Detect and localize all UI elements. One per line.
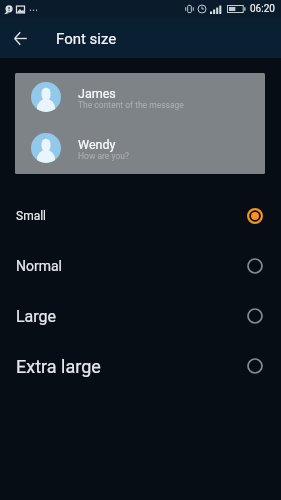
button[interactable]: Extra large [0, 341, 281, 391]
staticText: Extra large [16, 356, 101, 377]
button[interactable]: Back [0, 18, 40, 58]
button[interactable]: Normal [0, 241, 281, 291]
staticText: Large [16, 307, 57, 326]
staticText: 06:20 [250, 3, 275, 15]
staticText: Small [16, 209, 47, 223]
staticText: Wendy [78, 137, 116, 152]
button[interactable]: Large [0, 291, 281, 341]
button[interactable]: Small [0, 191, 281, 241]
staticText: The content of the message [78, 100, 184, 110]
staticText: How are you? [78, 151, 129, 161]
staticText: Font size [56, 30, 117, 48]
staticText: Normal [16, 258, 63, 274]
staticText: James [78, 86, 116, 101]
